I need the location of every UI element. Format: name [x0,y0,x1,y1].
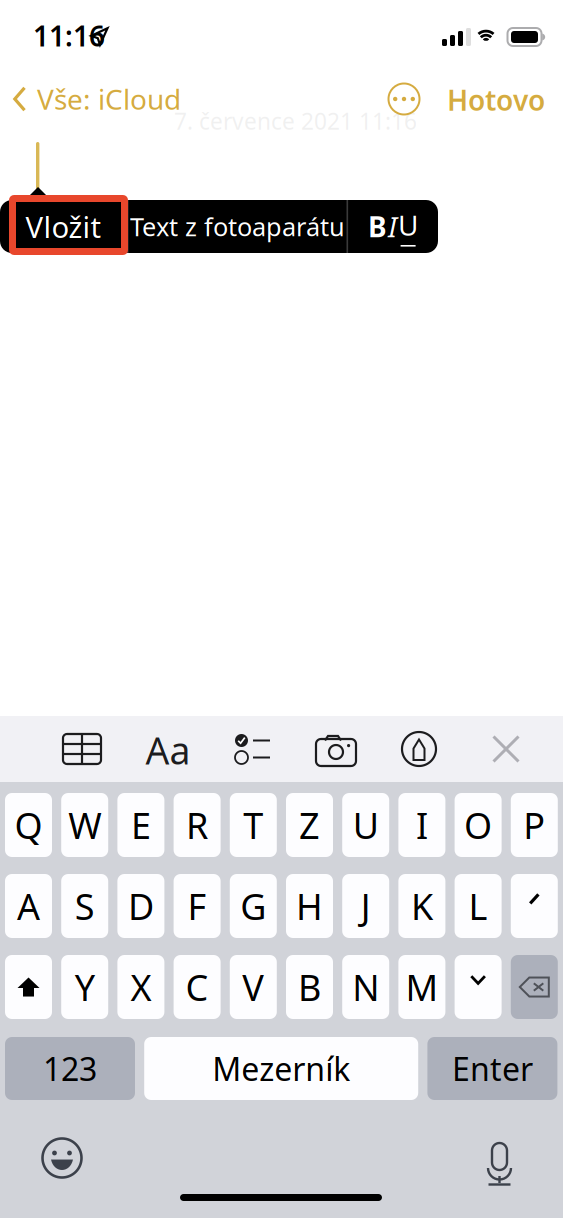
staticText: Text z fotoaparátu [130,210,345,243]
button[interactable]: P [511,793,558,857]
button[interactable]: J [342,874,389,938]
staticText: I [416,801,428,849]
staticText: O [464,801,492,849]
staticText: K [411,882,433,930]
button[interactable]: N [342,955,389,1019]
button[interactable]: Text z fotoaparátu [128,200,346,253]
button[interactable]: Q [5,793,52,857]
staticText: P [523,801,545,849]
staticText: L [469,882,488,930]
button[interactable]: Mezerník [144,1037,418,1100]
staticText: Enter [452,1047,533,1090]
button[interactable]: Enter [427,1037,557,1100]
staticText: 7. července 2021 11:16 [174,106,417,136]
staticText: N [352,963,379,1011]
button[interactable]: U [342,793,389,857]
staticText: Mezerník [212,1047,350,1090]
button[interactable]: Y [61,955,108,1019]
staticText: Hotovo [447,81,545,119]
staticText: R [186,801,208,849]
staticText: B [298,963,321,1011]
staticText: D [128,882,154,930]
button[interactable]: Shift [5,955,52,1019]
button[interactable]: C [174,955,221,1019]
button[interactable]: More options [388,83,420,115]
button[interactable]: W [61,793,108,857]
button[interactable]: Vložit [0,200,127,253]
button[interactable]: Z [286,793,333,857]
button[interactable]: Delete [511,955,558,1019]
button[interactable]: S [61,874,108,938]
staticText: W [68,801,101,849]
button[interactable]: Checklist [226,734,261,764]
button[interactable]: K [398,874,445,938]
staticText: Aa [145,725,190,775]
staticText: Z [299,801,320,849]
staticText: U [353,801,379,849]
button[interactable]: O [455,793,502,857]
staticText: G [240,882,266,930]
button[interactable]: H [286,874,333,938]
staticText: Vše: iCloud [37,80,181,118]
staticText: Y [75,963,95,1011]
button[interactable]: Dictation [487,1135,512,1178]
staticText: F [188,882,207,930]
button[interactable]: I [398,793,445,857]
button[interactable]: G [230,874,277,938]
button[interactable]: Camera [316,733,356,764]
staticText: B [368,208,387,245]
staticText: Vložit [25,207,101,246]
button[interactable]: Vše: iCloud [0,73,191,125]
staticText: U [398,206,418,244]
staticText: 123 [43,1047,97,1090]
button[interactable]: B [286,955,333,1019]
staticText: H [296,882,323,930]
button[interactable]: R [174,793,221,857]
button[interactable]: Emoji keyboard [42,1138,82,1178]
staticText: E [131,801,151,849]
button[interactable]: X [117,955,164,1019]
button[interactable]: Hotovo [436,74,556,126]
staticText: V [242,963,264,1011]
staticText: I [388,208,397,245]
button[interactable]: M [398,955,445,1019]
staticText: M [405,963,438,1011]
button[interactable]: Table [63,734,101,764]
staticText: T [243,801,263,849]
staticText: 11:16 [33,17,105,54]
staticText: X [130,963,151,1011]
button[interactable]: Close keyboard [492,735,520,763]
staticText: A [17,882,40,930]
button[interactable]: L [455,874,502,938]
staticText: Q [14,801,42,849]
staticText: J [361,882,371,930]
button[interactable]: 123 [5,1037,135,1100]
button[interactable]: V [230,955,277,1019]
button[interactable]: D [117,874,164,938]
button[interactable]: Caron accent [455,955,502,1019]
button[interactable]: A [5,874,52,938]
staticText: S [75,882,95,930]
button[interactable]: Format text [145,733,191,767]
button[interactable]: Markup [402,732,436,766]
button[interactable]: T [230,793,277,857]
staticText: C [186,963,209,1011]
button[interactable]: Bold Italic Underline [348,200,438,253]
button[interactable]: Acute accent [511,874,558,938]
button[interactable]: F [174,874,221,938]
button[interactable]: E [117,793,164,857]
